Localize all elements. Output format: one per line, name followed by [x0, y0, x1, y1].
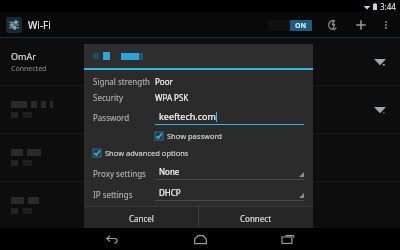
button[interactable]: ON	[266, 20, 314, 31]
staticText: Cancel	[129, 213, 154, 224]
staticText: Connected	[11, 64, 47, 74]
staticText: keeftech.com	[159, 110, 216, 122]
button[interactable]: Show advanced options	[93, 148, 189, 158]
button[interactable]: IP settings	[93, 187, 304, 201]
staticText: Proxy settings	[93, 168, 155, 179]
button[interactable]	[0, 134, 400, 182]
button[interactable]: Proxy settings	[93, 166, 304, 180]
button[interactable]	[0, 182, 400, 228]
staticText: Connect	[240, 213, 272, 224]
staticText: Show password	[167, 131, 222, 141]
staticText: Password	[93, 112, 155, 123]
button[interactable]: Connect	[199, 207, 313, 229]
button[interactable]: Recent apps	[266, 228, 310, 250]
staticText: Show advanced options	[105, 148, 189, 158]
staticText: IP settings	[93, 189, 155, 200]
staticText: Security	[93, 92, 155, 103]
staticText: OmAr	[11, 50, 36, 62]
button[interactable]: Cancel	[84, 207, 198, 229]
button[interactable]: Back	[90, 228, 134, 250]
button[interactable]: Add network	[352, 16, 370, 34]
staticText: Signal strength	[93, 76, 155, 87]
button[interactable]: More options	[378, 17, 394, 33]
button[interactable]: Scan	[324, 16, 342, 34]
staticText: DHCP	[159, 187, 181, 198]
staticText: ON	[295, 21, 307, 31]
button[interactable]	[0, 86, 400, 134]
staticText: WPA PSK	[155, 92, 189, 103]
button[interactable]: OmAr	[0, 38, 400, 86]
button[interactable]: Home	[178, 228, 222, 250]
button[interactable]: Settings	[6, 17, 22, 33]
staticText: 3:44	[380, 1, 396, 12]
staticText: Poor	[155, 76, 173, 87]
staticText: None	[159, 166, 180, 177]
staticText: Wi-Fi	[28, 18, 51, 32]
button[interactable]: Show password	[155, 131, 222, 141]
